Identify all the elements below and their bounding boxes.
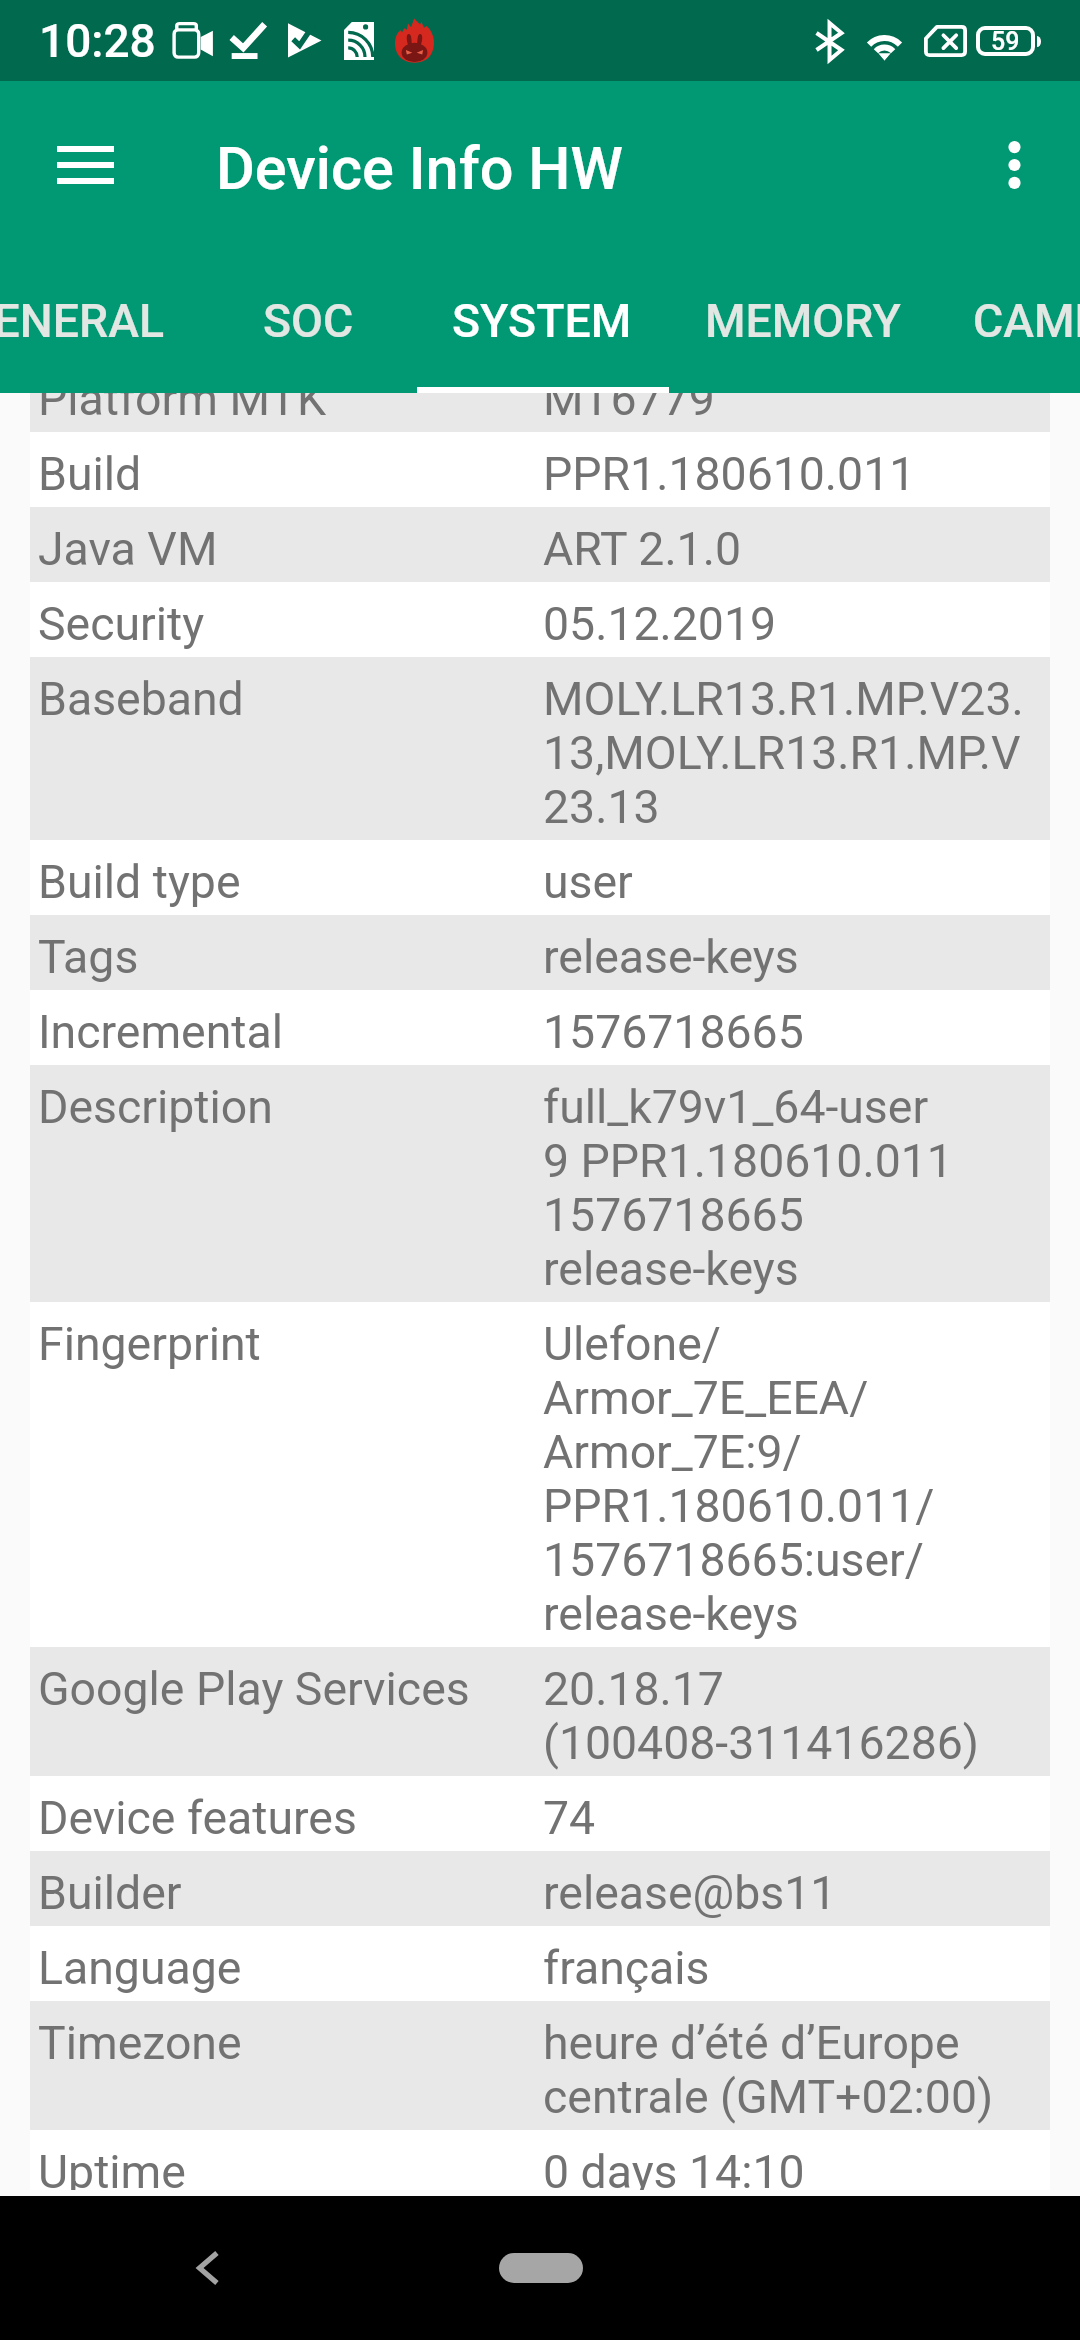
- staticText: PPR1.180610.011: [543, 447, 916, 501]
- staticText: MEMORY: [705, 294, 901, 348]
- staticText: Incremental: [38, 1005, 543, 1059]
- staticText: full_k79v1_64-user 9 PPR1.180610.011 157…: [543, 1080, 953, 1296]
- button[interactable]: Build: [30, 432, 1050, 507]
- staticText: heure d’été d’Europe centrale (GMT+02:00…: [543, 2016, 994, 2124]
- button[interactable]: Build type: [30, 840, 1050, 915]
- staticText: CAMERA: [973, 294, 1080, 348]
- button[interactable]: Tags: [30, 915, 1050, 990]
- staticText: 05.12.2019: [543, 597, 777, 651]
- button[interactable]: MEMORY: [668, 249, 937, 393]
- staticText: Build type: [38, 855, 543, 909]
- staticText: Builder: [38, 1866, 543, 1920]
- button[interactable]: Platform MTK: [30, 393, 1050, 432]
- staticText: 1576718665: [543, 1005, 804, 1059]
- staticText: GENERAL: [0, 294, 164, 348]
- staticText: Baseband: [38, 672, 543, 726]
- staticText: Java VM: [38, 522, 543, 576]
- staticText: Build: [38, 447, 543, 501]
- staticText: user: [543, 855, 633, 909]
- staticText: Device Info HW: [216, 134, 623, 204]
- staticText: Google Play Services: [38, 1662, 543, 1716]
- button[interactable]: Device features: [30, 1776, 1050, 1851]
- staticText: SOC: [263, 294, 354, 348]
- button[interactable]: Timezone: [30, 2001, 1050, 2130]
- button[interactable]: Fingerprint: [30, 1302, 1050, 1647]
- staticText: Device features: [38, 1791, 543, 1845]
- staticText: Ulefone/ Armor_7E_EEA/ Armor_7E:9/ PPR1.…: [543, 1317, 935, 1641]
- staticText: Timezone: [38, 2016, 543, 2070]
- staticText: 10:28: [39, 14, 156, 68]
- button[interactable]: Home: [499, 2253, 583, 2283]
- staticText: Security: [38, 597, 543, 651]
- button[interactable]: Incremental: [30, 990, 1050, 1065]
- button[interactable]: Open navigation menu: [34, 114, 136, 216]
- button[interactable]: SOC: [200, 249, 416, 393]
- button[interactable]: Description: [30, 1065, 1050, 1302]
- button[interactable]: Uptime: [30, 2130, 1050, 2190]
- staticText: Platform MTK: [38, 393, 543, 426]
- button[interactable]: CAMERA: [937, 249, 1080, 393]
- staticText: Description: [38, 1080, 543, 1134]
- staticText: Tags: [38, 930, 543, 984]
- button[interactable]: Builder: [30, 1851, 1050, 1926]
- staticText: 0 days 14:10: [543, 2145, 805, 2190]
- button[interactable]: Back: [162, 2223, 252, 2313]
- staticText: ART 2.1.0: [543, 522, 741, 576]
- button[interactable]: More options: [966, 117, 1062, 213]
- staticText: 74: [543, 1791, 596, 1845]
- button[interactable]: SYSTEM: [416, 249, 668, 393]
- button[interactable]: Java VM: [30, 507, 1050, 582]
- staticText: release@bs11: [543, 1866, 837, 1920]
- staticText: Uptime: [38, 2145, 543, 2190]
- staticText: 59: [991, 27, 1020, 56]
- staticText: MT6779: [543, 393, 715, 426]
- staticText: Language: [38, 1941, 543, 1995]
- staticText: français: [543, 1941, 710, 1995]
- button[interactable]: Language: [30, 1926, 1050, 2001]
- button[interactable]: Baseband: [30, 657, 1050, 840]
- button[interactable]: Security: [30, 582, 1050, 657]
- staticText: MOLY.LR13.R1.MP.V23. 13,MOLY.LR13.R1.MP.…: [543, 672, 1024, 834]
- staticText: release-keys: [543, 930, 799, 984]
- staticText: SYSTEM: [452, 294, 632, 348]
- staticText: 20.18.17 (100408-311416286): [543, 1662, 979, 1770]
- button[interactable]: Google Play Services: [30, 1647, 1050, 1776]
- button[interactable]: GENERAL: [0, 249, 200, 393]
- staticText: Fingerprint: [38, 1317, 543, 1371]
